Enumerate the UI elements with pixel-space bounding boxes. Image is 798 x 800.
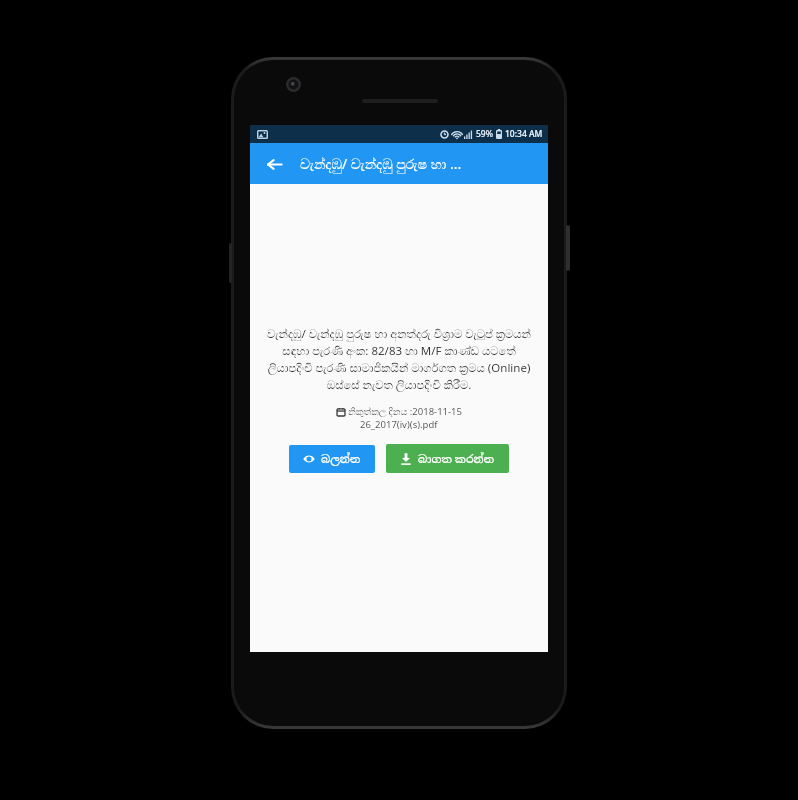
staticText: වැන්දඹු/ වැන්දඹු පුරුෂ හා ... [300,154,462,173]
staticText: නිකුත්කල දිනය :2018-11-15 [348,405,462,418]
staticText: බාගත කරන්න [418,451,495,466]
staticText: 26_2017(iv)(s).pdf [360,418,438,431]
staticText: බලන්න [321,452,361,466]
button[interactable]: බාගත කරන්න [386,444,509,473]
staticText: වැන්දඹු/ වැන්දඹු පුරුෂ හා අනත්දරු විශ්‍ර… [264,326,534,393]
button[interactable]: බලන්න [289,445,375,473]
staticText: 59% [476,128,493,140]
button[interactable]: Back [258,148,290,180]
staticText: 10:34 AM [505,128,543,140]
